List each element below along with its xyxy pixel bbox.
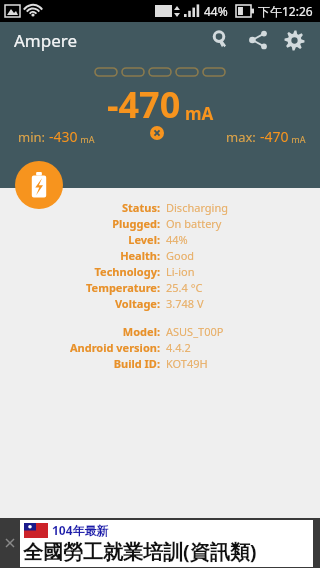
staticText: Temperature: — [86, 280, 160, 295]
staticText: Li-ion — [166, 264, 195, 279]
staticText: 104年最新 — [52, 522, 109, 538]
staticText: 25.4 °C — [166, 280, 203, 295]
staticText: mA — [185, 102, 214, 125]
staticText: Build ID: — [113, 356, 160, 371]
button[interactable]: Settings — [276, 22, 312, 58]
staticText: Discharging — [166, 200, 228, 215]
button[interactable]: Unlock pro — [204, 22, 240, 58]
button[interactable]: Battery — [15, 161, 63, 209]
staticText: mA — [78, 133, 95, 145]
button[interactable]: Reset — [150, 126, 164, 140]
staticText: Technology: — [94, 264, 160, 279]
staticText: KOT49H — [166, 356, 208, 371]
staticText: Ampere — [14, 29, 78, 52]
staticText: ASUS_T00P — [166, 324, 224, 339]
staticText: Model: — [122, 324, 160, 339]
staticText: 44% — [166, 232, 188, 247]
staticText: 全國勞工就業培訓(資訊類) — [23, 538, 257, 565]
staticText: Plugged: — [112, 216, 160, 231]
staticText: -470 — [107, 80, 181, 129]
staticText: 4.4.2 — [166, 340, 191, 355]
staticText: -430 — [49, 127, 78, 146]
staticText: min: — [18, 128, 49, 146]
staticText: 下午12:26 — [258, 3, 313, 19]
staticText: Good — [166, 248, 195, 263]
button[interactable]: Close ad — [0, 518, 320, 568]
button[interactable]: Close ad — [2, 535, 18, 551]
staticText: Health: — [120, 248, 160, 263]
staticText: max: — [226, 128, 260, 146]
staticText: Level: — [128, 232, 160, 247]
staticText: 44% — [204, 3, 228, 19]
staticText: Status: — [122, 200, 160, 215]
staticText: mA — [289, 133, 306, 145]
staticText: -470 — [260, 127, 289, 146]
staticText: 3.748 V — [166, 296, 204, 311]
button[interactable]: Share — [240, 22, 276, 58]
staticText: Android version: — [69, 340, 160, 355]
staticText: On battery — [166, 216, 222, 231]
staticText: Voltage: — [114, 296, 160, 311]
